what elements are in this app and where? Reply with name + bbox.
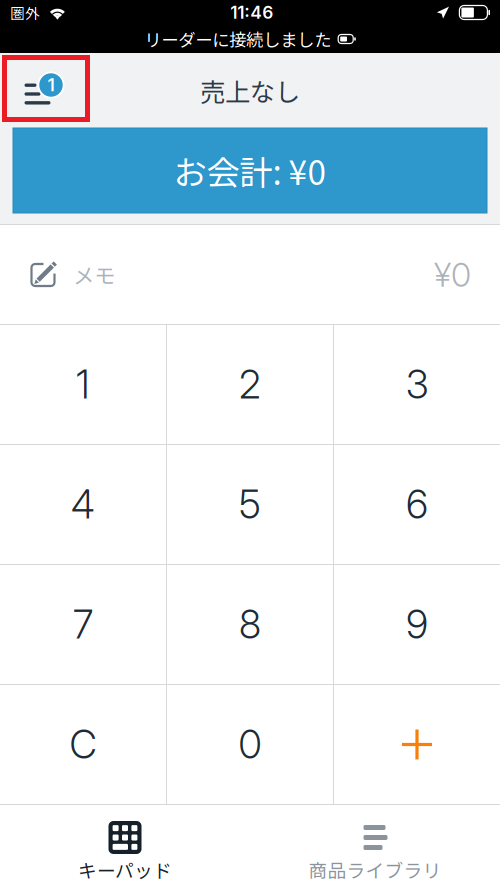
- button[interactable]: 0: [167, 685, 333, 804]
- staticText: 売上なし: [200, 72, 300, 109]
- staticText: 2: [239, 361, 261, 408]
- staticText: メモ: [73, 259, 115, 290]
- staticText: 6: [406, 481, 428, 528]
- staticText: ¥0: [434, 254, 471, 295]
- button[interactable]: [334, 685, 500, 804]
- button[interactable]: C: [0, 685, 166, 804]
- staticText: お会計: ¥0: [173, 146, 326, 195]
- staticText: 1: [76, 361, 90, 408]
- staticText: 商品ライブラリ: [308, 856, 441, 883]
- button[interactable]: 4: [0, 445, 166, 564]
- staticText: C: [69, 721, 96, 768]
- button[interactable]: Menu: [3, 57, 91, 124]
- staticText: 3: [406, 361, 428, 408]
- staticText: キーパッド: [78, 856, 172, 883]
- staticText: 9: [406, 601, 428, 648]
- button[interactable]: 5: [167, 445, 333, 564]
- button[interactable]: 6: [334, 445, 500, 564]
- button[interactable]: 7: [0, 565, 166, 684]
- staticText: 1: [47, 74, 54, 95]
- button[interactable]: 9: [334, 565, 500, 684]
- button[interactable]: 商品ライブラリ: [250, 805, 500, 889]
- button[interactable]: 3: [334, 325, 500, 444]
- button[interactable]: お会計: ¥0: [13, 128, 487, 213]
- staticText: 5: [239, 481, 261, 528]
- staticText: 圏外: [10, 2, 40, 23]
- staticText: 11:46: [230, 2, 273, 23]
- staticText: 8: [239, 601, 261, 648]
- button[interactable]: 8: [167, 565, 333, 684]
- staticText: リーダーに接続しました: [144, 26, 331, 52]
- button[interactable]: 1: [0, 325, 166, 444]
- staticText: 0: [238, 721, 261, 768]
- button[interactable]: 2: [167, 325, 333, 444]
- staticText: 7: [73, 601, 93, 648]
- button[interactable]: メモ: [0, 225, 500, 324]
- staticText: 4: [71, 481, 95, 528]
- button[interactable]: キーパッド: [0, 805, 250, 889]
